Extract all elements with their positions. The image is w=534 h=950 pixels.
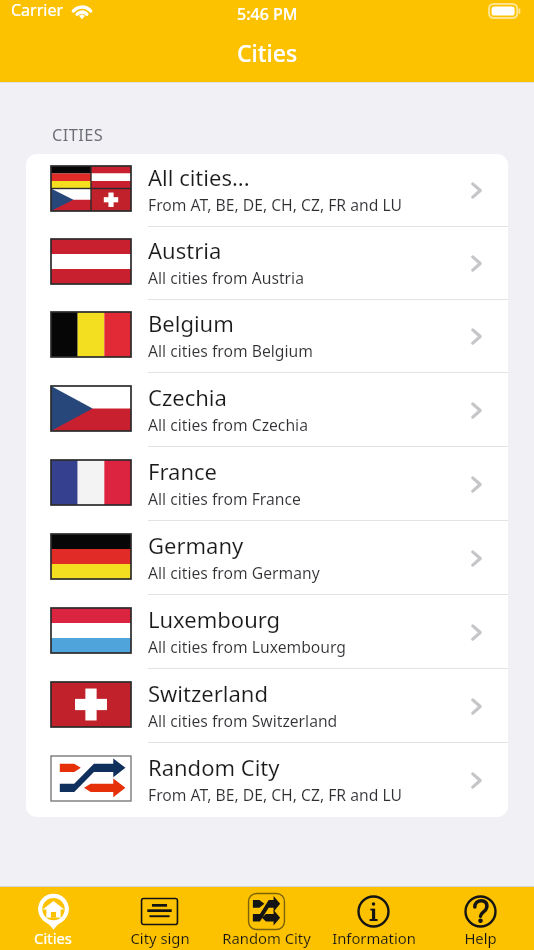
staticText: France <box>148 456 217 486</box>
button[interactable]: Czechia <box>26 373 508 447</box>
staticText: All cities from Czechia <box>148 414 308 435</box>
staticText: Switzerland <box>148 678 268 708</box>
staticText: Information <box>332 928 416 948</box>
button[interactable]: Help <box>427 887 534 950</box>
button[interactable]: Switzerland <box>26 669 508 743</box>
staticText: From AT, BE, DE, CH, CZ, FR and LU <box>148 784 402 805</box>
staticText: Carrier <box>11 0 64 21</box>
staticText: City sign <box>130 928 190 948</box>
button[interactable]: Austria <box>26 227 508 300</box>
staticText: All cities from Austria <box>148 267 304 288</box>
button[interactable]: All cities... <box>26 154 508 227</box>
staticText: Czechia <box>148 382 227 412</box>
staticText: Random City <box>222 928 311 948</box>
staticText: Belgium <box>148 308 234 338</box>
staticText: All cities from Luxembourg <box>148 636 346 657</box>
button[interactable]: City sign <box>106 887 213 950</box>
staticText: All cities from France <box>148 488 301 509</box>
staticText: Germany <box>148 530 244 560</box>
button[interactable]: Germany <box>26 521 508 595</box>
button[interactable]: Random City <box>213 887 320 950</box>
staticText: Help <box>464 928 497 948</box>
staticText: All cities from Switzerland <box>148 710 338 731</box>
staticText: All cities from Belgium <box>148 340 313 361</box>
staticText: Cities <box>34 928 72 948</box>
staticText: All cities from Germany <box>148 562 320 583</box>
button[interactable]: Random City <box>26 743 508 817</box>
staticText: All cities... <box>148 162 250 192</box>
staticText: Austria <box>148 235 222 265</box>
staticText: Cities <box>237 37 298 68</box>
button[interactable]: Belgium <box>26 300 508 373</box>
staticText: Luxembourg <box>148 604 281 634</box>
staticText: Random City <box>148 752 280 782</box>
staticText: CITIES <box>52 123 104 145</box>
button[interactable]: Cities <box>0 887 106 950</box>
button[interactable]: Information <box>320 887 427 950</box>
button[interactable]: France <box>26 447 508 521</box>
button[interactable]: Luxembourg <box>26 595 508 669</box>
staticText: 5:46 PM <box>237 3 298 25</box>
staticText: From AT, BE, DE, CH, CZ, FR and LU <box>148 194 402 215</box>
